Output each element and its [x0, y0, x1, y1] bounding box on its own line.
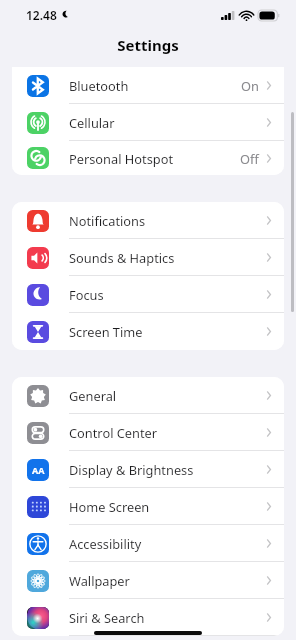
staticText: Off [240, 150, 259, 167]
staticText: Settings [117, 35, 179, 55]
staticText: Cellular [69, 114, 265, 131]
staticText: Focus [69, 286, 265, 303]
staticText: Home Screen [69, 498, 265, 515]
button[interactable]: Sounds & Haptics [12, 239, 284, 276]
staticText: Personal Hotspot [69, 150, 240, 167]
button[interactable]: Screen Time [12, 313, 284, 350]
staticText: 12.48 [26, 7, 57, 23]
button[interactable]: Notifications [12, 202, 284, 239]
staticText: On [241, 77, 259, 94]
staticText: Display & Brightness [69, 461, 265, 478]
button[interactable]: Focus [12, 276, 284, 313]
staticText: AA [32, 464, 45, 476]
button[interactable]: AA [12, 451, 284, 488]
staticText: Accessibility [69, 535, 265, 552]
button[interactable]: Personal Hotspot [12, 141, 284, 175]
staticText: Control Center [69, 424, 265, 441]
button[interactable]: Control Center [12, 414, 284, 451]
button[interactable]: Home Screen [12, 488, 284, 525]
staticText: Screen Time [69, 323, 265, 340]
staticText: Sounds & Haptics [69, 249, 265, 266]
button[interactable]: General [12, 377, 284, 414]
staticText: Notifications [69, 212, 265, 229]
button[interactable]: Bluetooth [12, 67, 284, 104]
button[interactable]: Accessibility [12, 525, 284, 562]
staticText: General [69, 387, 265, 404]
button[interactable]: Cellular [12, 104, 284, 141]
staticText: Wallpaper [69, 572, 265, 589]
button[interactable]: Siri & Search [12, 599, 284, 636]
staticText: Siri & Search [69, 609, 265, 626]
staticText: Bluetooth [69, 77, 241, 94]
button[interactable]: Wallpaper [12, 562, 284, 599]
